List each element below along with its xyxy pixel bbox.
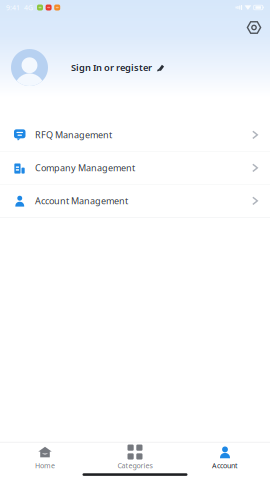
button[interactable]: Account (180, 442, 270, 473)
button[interactable]: Categories (90, 442, 180, 473)
staticText: Company Management (35, 162, 135, 174)
button[interactable]: Home (0, 442, 90, 473)
staticText: Account Management (35, 195, 128, 207)
staticText: Home (35, 461, 55, 470)
staticText: 9:41 4G (6, 3, 33, 12)
staticText: Account (212, 461, 238, 470)
button[interactable]: Settings (241, 15, 266, 40)
button[interactable]: Sign In or register (71, 57, 164, 78)
staticText: Sign In or register (71, 61, 152, 74)
staticText: Categories (117, 461, 152, 470)
button[interactable]: Account Management (0, 185, 270, 217)
staticText: RFQ Management (35, 129, 112, 141)
button[interactable]: Company Management (0, 152, 270, 184)
button[interactable]: RFQ Management (0, 119, 270, 151)
